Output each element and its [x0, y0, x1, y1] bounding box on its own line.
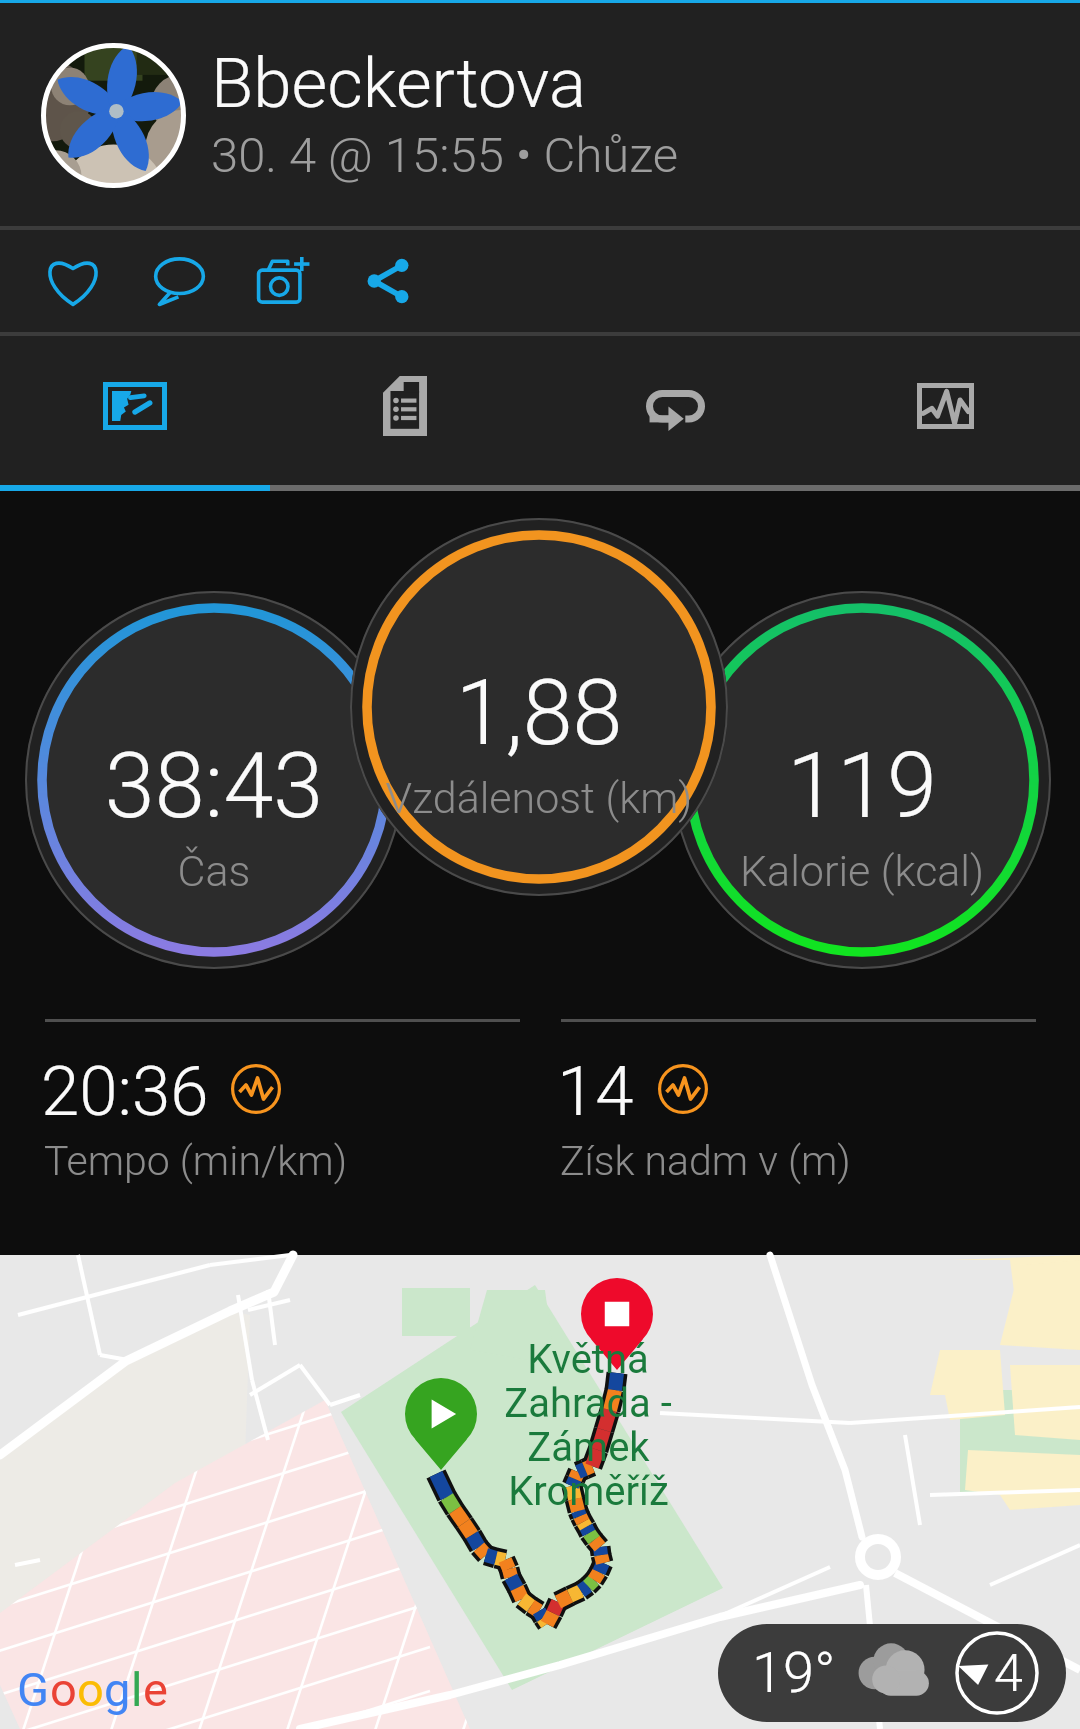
- staticText: o: [77, 1662, 104, 1717]
- staticText: o: [50, 1662, 77, 1717]
- button[interactable]: 38:43: [34, 604, 394, 956]
- staticText: 19°: [752, 1640, 836, 1706]
- button[interactable]: 119: [682, 604, 1042, 956]
- button[interactable]: Like: [31, 233, 115, 328]
- button[interactable]: Bbeckertova: [0, 3, 1080, 226]
- button[interactable]: Laps: [540, 336, 810, 485]
- button[interactable]: 14: [561, 1019, 1041, 1219]
- button[interactable]: Share: [346, 233, 430, 328]
- staticText: 38:43: [34, 734, 394, 839]
- staticText: 20:36: [41, 1051, 209, 1132]
- staticText: Květná: [527, 1336, 649, 1380]
- staticText: 14: [557, 1051, 634, 1132]
- staticText: Kroměříž: [508, 1468, 669, 1512]
- button[interactable]: Details: [270, 336, 540, 485]
- button[interactable]: 1,88: [359, 531, 719, 883]
- button[interactable]: Graphs: [810, 336, 1080, 485]
- staticText: 1,88: [359, 661, 719, 766]
- staticText: e: [143, 1662, 168, 1717]
- staticText: 30. 4 @ 15:55 • Chůze: [211, 127, 679, 184]
- staticText: 4: [994, 1643, 1023, 1704]
- button[interactable]: Add photo: [241, 233, 325, 328]
- staticText: Bbeckertova: [211, 43, 586, 124]
- staticText: G: [17, 1662, 50, 1717]
- button[interactable]: Comment: [137, 233, 221, 328]
- button[interactable]: Map: [0, 336, 270, 485]
- staticText: Získ nadm v (m): [560, 1137, 851, 1185]
- staticText: Tempo (min/km): [44, 1137, 348, 1185]
- staticText: Zámek: [527, 1424, 650, 1468]
- staticText: 119: [682, 734, 1042, 839]
- staticText: Vzdálenost (km): [359, 773, 719, 823]
- staticText: Kalorie (kcal): [682, 846, 1042, 896]
- button[interactable]: 20:36: [45, 1019, 525, 1219]
- staticText: g: [104, 1662, 131, 1717]
- staticText: Zahrada -: [504, 1380, 672, 1424]
- staticText: Čas: [34, 846, 394, 896]
- button[interactable]: 19°: [718, 1624, 1066, 1722]
- staticText: l: [131, 1662, 143, 1717]
